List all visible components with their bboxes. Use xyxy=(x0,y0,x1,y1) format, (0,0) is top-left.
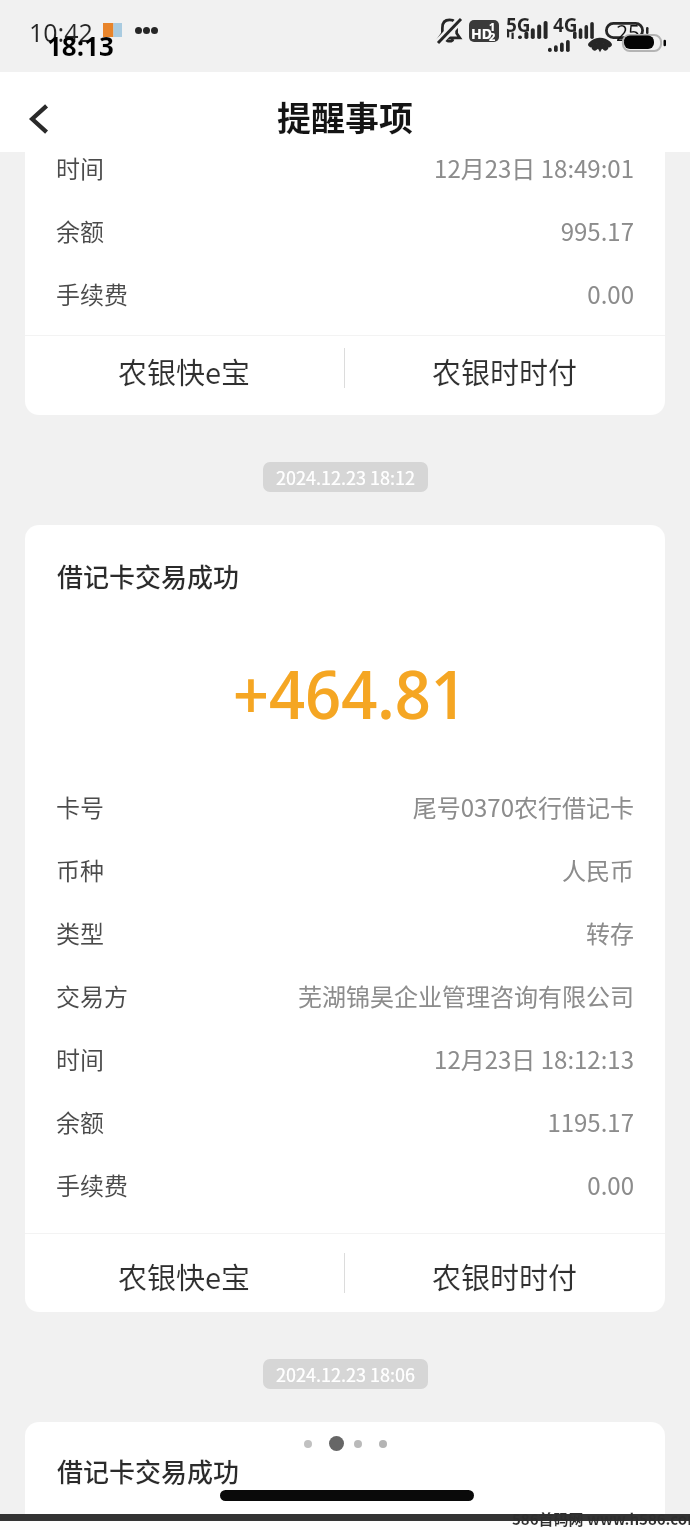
staticText: 农银快e宝 xyxy=(118,350,251,392)
staticText: 0.00 xyxy=(587,1167,634,1202)
staticText: 18:13 xyxy=(47,28,114,63)
staticText: 类型 xyxy=(56,915,104,950)
staticText: 交易方 xyxy=(56,978,128,1013)
staticText: 手续费 xyxy=(56,276,128,311)
staticText: 尾号0370农行借记卡 xyxy=(412,789,634,824)
staticText: 2 xyxy=(489,29,496,42)
staticText: 5G xyxy=(506,12,531,38)
staticText: 0.00 xyxy=(587,276,634,311)
staticText: 芜湖锦昊企业管理咨询有限公司 xyxy=(298,978,634,1013)
staticText: 25 xyxy=(616,19,641,48)
staticText: 余额 xyxy=(56,1104,104,1139)
staticText: 2024.12.23 18:06 xyxy=(276,1361,415,1387)
staticText: HD xyxy=(471,24,492,42)
staticText: 转存 xyxy=(586,915,634,950)
staticText: 币种 xyxy=(56,852,104,887)
staticText: 余额 xyxy=(56,213,104,248)
staticText: 995.17 xyxy=(560,213,634,248)
staticText: 借记卡交易成功 xyxy=(57,1452,240,1490)
staticText: 卡号 xyxy=(56,789,104,824)
button[interactable]: 农银时时付 xyxy=(345,336,665,399)
staticText: 4G xyxy=(553,12,578,38)
staticText: 1195.17 xyxy=(547,1104,634,1139)
staticText: 提醒事项 xyxy=(277,92,413,141)
staticText: 12月23日 18:12:13 xyxy=(434,1041,634,1076)
staticText: +464.81 xyxy=(233,647,467,738)
button[interactable]: 农银快e宝 xyxy=(25,336,344,399)
button[interactable]: 农银快e宝 xyxy=(25,1234,344,1312)
staticText: 12月23日 18:49:01 xyxy=(434,152,634,185)
staticText: 借记卡交易成功 xyxy=(57,557,240,595)
button[interactable]: 农银时时付 xyxy=(345,1234,665,1312)
staticText: 农银时时付 xyxy=(432,350,578,392)
staticText: 农银快e宝 xyxy=(118,1255,251,1297)
staticText: 2024.12.23 18:12 xyxy=(276,464,415,490)
staticText: 时间 xyxy=(56,1041,104,1076)
staticText: 农银时时付 xyxy=(432,1255,578,1297)
staticText: 时间 xyxy=(56,152,104,185)
staticText: 1 xyxy=(489,20,496,34)
staticText: 手续费 xyxy=(56,1167,128,1202)
staticText: 586首码网 www.h586.com xyxy=(512,1508,690,1530)
staticText: 10:42 xyxy=(29,15,93,49)
button[interactable]: Back xyxy=(12,92,66,146)
staticText: 人民币 xyxy=(562,852,634,887)
